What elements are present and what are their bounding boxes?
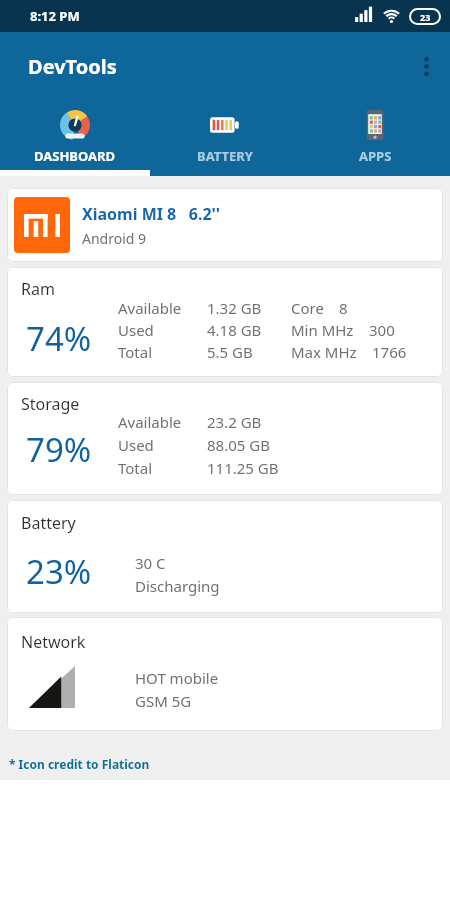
staticText: Used [118, 320, 154, 340]
staticText: 1.32 GB [207, 298, 262, 318]
staticText: Core [291, 298, 324, 318]
button[interactable]: APPS [300, 100, 450, 176]
staticText: 23.2 GB [207, 412, 262, 432]
staticText: Battery [21, 512, 76, 534]
staticText: Max MHz [291, 342, 357, 362]
staticText: 5.5 GB [207, 342, 253, 362]
staticText: 8:12 PM [30, 7, 80, 25]
button[interactable]: DASHBOARD [0, 100, 150, 176]
staticText: Available [118, 298, 182, 318]
staticText: 1766 [372, 342, 407, 362]
staticText: Storage [21, 393, 80, 415]
staticText: 4.18 GB [207, 320, 262, 340]
button[interactable]: Battery [7, 500, 443, 613]
staticText: GSM 5G [135, 691, 192, 711]
staticText: Network [21, 631, 86, 653]
button[interactable]: Xiaomi MI 8 6.2'' [7, 188, 443, 262]
staticText: 74% [26, 316, 92, 361]
staticText: BATTERY [197, 147, 253, 165]
staticText: DevTools [28, 53, 117, 80]
staticText: Available [118, 412, 182, 432]
button[interactable]: Network [7, 617, 443, 731]
button[interactable] [406, 46, 446, 86]
staticText: Total [118, 458, 153, 478]
button[interactable]: Storage [7, 382, 443, 495]
staticText: 23 [420, 11, 431, 23]
button[interactable]: BATTERY [150, 100, 300, 176]
staticText: Used [118, 435, 154, 455]
staticText: Xiaomi MI 8 6.2'' [82, 203, 221, 225]
staticText: 300 [369, 320, 395, 340]
staticText: 88.05 GB [207, 435, 270, 455]
staticText: 111.25 GB [207, 458, 279, 478]
staticText: Total [118, 342, 153, 362]
staticText: Min MHz [291, 320, 354, 340]
staticText: 23% [26, 549, 92, 594]
staticText: HOT mobile [135, 668, 219, 688]
staticText: 8 [339, 298, 348, 318]
staticText: APPS [359, 147, 392, 165]
staticText: 79% [26, 427, 92, 472]
staticText: DASHBOARD [34, 147, 116, 165]
staticText: Android 9 [82, 229, 147, 248]
button[interactable]: Ram [7, 267, 443, 377]
staticText: Ram [21, 278, 55, 300]
staticText: 30 C [135, 553, 166, 573]
staticText: * Icon credit to Flaticon [9, 756, 150, 772]
staticText: Discharging [135, 576, 220, 596]
